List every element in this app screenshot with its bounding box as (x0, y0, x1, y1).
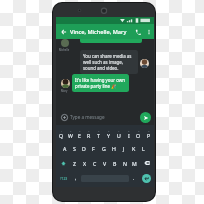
staticText: H (112, 145, 116, 152)
button[interactable]: D (79, 141, 88, 155)
button[interactable]: X (80, 156, 89, 170)
staticText: X (83, 160, 87, 167)
staticText: Vince, Michelle, Mary (70, 28, 132, 36)
button[interactable]: A (61, 141, 69, 155)
staticText: M (132, 160, 137, 167)
button[interactable]: Back (58, 26, 69, 37)
staticText: L (142, 145, 145, 152)
staticText: Y (107, 132, 110, 139)
staticText: 8 (128, 129, 130, 132)
staticText: O (136, 132, 141, 139)
button[interactable]: 4 (84, 127, 93, 140)
staticText: 2 (70, 129, 72, 132)
staticText: , (75, 175, 77, 181)
button[interactable]: ?123 (57, 171, 71, 185)
staticText: A (63, 145, 67, 152)
button[interactable]: 3 (75, 127, 83, 140)
staticText: 7 (118, 129, 120, 132)
staticText: B (113, 160, 117, 167)
button[interactable]: Type a message (70, 114, 140, 120)
button[interactable]: Call (132, 26, 144, 38)
button[interactable]: G (99, 141, 108, 155)
button[interactable]: C (90, 156, 99, 170)
button[interactable]: S (70, 141, 78, 155)
staticText: R (87, 132, 91, 139)
staticText: I (128, 132, 130, 139)
staticText: 6 (108, 129, 110, 132)
staticText: J (123, 145, 125, 152)
staticText: Q (59, 132, 64, 139)
button[interactable]: 1 (57, 127, 65, 140)
staticText: 9 (138, 129, 140, 132)
staticText: 1 (61, 129, 63, 132)
button[interactable]: F (89, 141, 98, 155)
button[interactable]: Backspace (140, 156, 153, 170)
button[interactable]: 0 (144, 127, 153, 140)
staticText: F (92, 145, 95, 152)
staticText: K (132, 145, 136, 152)
staticText: T (97, 132, 100, 139)
button[interactable]: V (100, 156, 109, 170)
staticText: It's like having your own private party … (75, 77, 126, 89)
staticText: D (82, 145, 86, 152)
button[interactable]: Enter (142, 174, 151, 183)
staticText: 0 (148, 129, 150, 132)
staticText: . (133, 175, 135, 181)
button[interactable]: Period (130, 171, 138, 185)
button[interactable]: M (130, 156, 139, 170)
staticText: 4 (88, 129, 90, 132)
staticText: You can share media as well such as imag… (83, 53, 135, 71)
staticText: G (102, 145, 106, 152)
staticText: 3 (79, 129, 81, 132)
button[interactable]: Shift (57, 156, 69, 170)
button[interactable]: N (120, 156, 129, 170)
button[interactable]: L (139, 141, 148, 155)
staticText: Michelle (59, 48, 70, 52)
staticText: Mary (61, 89, 68, 93)
staticText: S (73, 145, 76, 152)
staticText: 5 (98, 129, 100, 132)
button[interactable]: Add attachment (59, 112, 69, 122)
button[interactable]: 7 (114, 127, 123, 140)
button[interactable]: B (110, 156, 119, 170)
button[interactable]: K (129, 141, 138, 155)
button[interactable]: More options (144, 27, 154, 37)
button[interactable]: You can share media as well such as imag… (80, 50, 138, 74)
staticText: ?123 (60, 176, 68, 181)
button[interactable]: 2 (66, 127, 74, 140)
staticText: N (123, 160, 127, 167)
staticText: U (117, 132, 121, 139)
staticText: V (103, 160, 107, 167)
staticText: P (147, 132, 151, 139)
button[interactable]: 8 (124, 127, 133, 140)
button[interactable]: 9 (134, 127, 143, 140)
button[interactable]: J (119, 141, 128, 155)
staticText: C (93, 160, 97, 167)
button[interactable]: H (109, 141, 118, 155)
button[interactable]: Comma (72, 171, 80, 185)
button[interactable]: 6 (104, 127, 113, 140)
staticText: E (78, 132, 81, 139)
button[interactable]: It's like having your own private party … (72, 74, 129, 92)
button[interactable]: 5 (94, 127, 103, 140)
staticText: Z (73, 160, 76, 167)
staticText: W (68, 132, 73, 139)
button[interactable]: Send (140, 112, 151, 123)
button[interactable]: Z (70, 156, 79, 170)
